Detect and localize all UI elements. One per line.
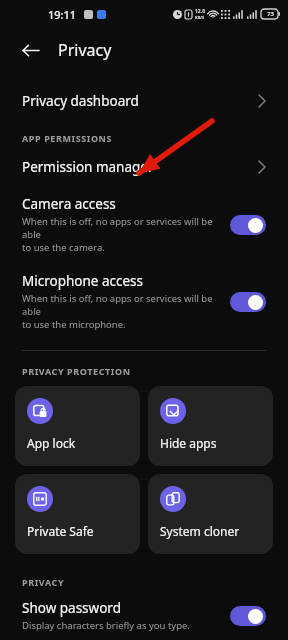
staticText: App lock [27,435,76,451]
staticText: Display characters briefly as you type. [22,619,190,632]
staticText: Privacy [58,39,112,61]
button[interactable]: Permission manager [0,150,288,184]
staticText: KB/S [195,15,205,20]
staticText: Permission manager [22,158,258,176]
staticText: 12.0 [195,8,205,15]
button[interactable]: Hide apps [148,386,273,466]
button[interactable]: App lock [15,386,140,466]
button[interactable]: Microphone access [0,269,288,334]
staticText: 19:11 [48,7,77,22]
button[interactable]: Microphone access toggle [230,292,266,312]
staticText: APP PERMISSIONS [22,132,288,144]
staticText: Camera access [22,195,116,213]
staticText: 73 [267,10,274,18]
staticText: Hide apps [160,435,217,451]
button[interactable]: Back [16,36,44,64]
button[interactable]: Camera access [0,192,288,257]
staticText: Private Safe [27,523,94,539]
staticText: PRIVACY PROTECTION [22,365,288,377]
staticText: Privacy dashboard [22,92,258,110]
staticText: Microphone access [22,272,144,290]
button[interactable]: Privacy dashboard [0,84,288,118]
staticText: When this is off, no apps or services wi… [22,215,222,254]
staticText: When this is off, no apps or services wi… [22,292,222,331]
button[interactable]: System cloner [148,474,273,554]
button[interactable]: Show password [0,596,288,635]
button[interactable]: Camera access toggle [230,215,266,235]
staticText: PRIVACY [22,576,288,588]
button[interactable]: Private Safe [15,474,140,554]
button[interactable]: Show password toggle [230,606,266,626]
staticText: System cloner [160,523,240,539]
staticText: Show password [22,599,121,617]
